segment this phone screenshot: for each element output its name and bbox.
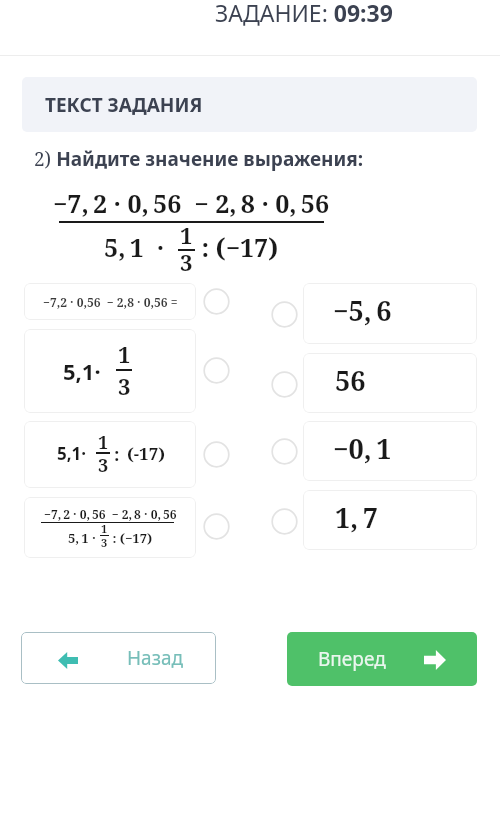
staticText: 1 [118, 339, 131, 369]
button[interactable]: Выбрать вариант ответа [271, 371, 298, 398]
staticText: 3 [118, 371, 131, 401]
button[interactable]: Выбрать вариант ответа [203, 441, 230, 468]
button[interactable]: 5,1· [24, 421, 196, 488]
button[interactable]: Выбрать вариант ответа [203, 288, 230, 315]
button[interactable]: Вперед [287, 632, 477, 686]
staticText: 1, 7 [335, 499, 378, 536]
staticText: Назад [127, 645, 184, 671]
staticText: −7, 2 · 0, 56 − 2, 8 · 0, 56 [44, 506, 177, 522]
staticText: −0, 1 [333, 430, 392, 467]
button[interactable]: −0, 1 [303, 421, 477, 481]
button[interactable]: 56 [303, 353, 477, 413]
staticText: −5, 6 [333, 292, 392, 329]
button[interactable]: Выбрать вариант ответа [203, 513, 230, 540]
staticText: : (−17) [109, 529, 153, 547]
button[interactable]: 1, 7 [303, 490, 477, 550]
button[interactable]: ТЕКСТ ЗАДАНИЯ [22, 77, 477, 132]
staticText: : [114, 442, 120, 467]
staticText: 1 [101, 521, 108, 536]
button[interactable]: −7, 2 · 0, 56 − 2, 8 · 0, 56 [24, 497, 196, 558]
staticText: 2) Найдите значение выражения: [34, 146, 364, 172]
staticText: −7,2 · 0,56 − 2,8 · 0,56 = [43, 294, 178, 310]
staticText: : (−17) [195, 230, 279, 264]
button[interactable]: Выбрать вариант ответа [271, 438, 298, 465]
staticText: 5, 1 · [68, 529, 100, 547]
staticText: ЗАДАНИЕ: 09:39 [215, 0, 393, 28]
staticText: 5, 1 · [104, 230, 178, 264]
staticText: 5,1· [63, 356, 101, 386]
staticText: 3 [101, 535, 108, 550]
staticText: −7, 2 · 0, 56 − 2, 8 · 0, 56 [53, 186, 330, 220]
staticText: Вперед [318, 646, 386, 672]
staticText: 56 [335, 362, 366, 399]
button[interactable]: Выбрать вариант ответа [271, 301, 298, 328]
staticText: 3 [98, 453, 109, 478]
staticText: 3 [180, 247, 193, 277]
staticText: 5,1· [57, 442, 87, 465]
staticText: ТЕКСТ ЗАДАНИЯ [45, 92, 203, 118]
button[interactable]: Выбрать вариант ответа [271, 508, 298, 535]
button[interactable]: −5, 6 [303, 283, 477, 344]
button[interactable]: Выбрать вариант ответа [203, 357, 230, 384]
staticText: 1 [98, 430, 109, 455]
button[interactable]: Назад [21, 632, 216, 684]
staticText: 1 [180, 220, 193, 250]
button[interactable]: −7,2 · 0,56 − 2,8 · 0,56 = [24, 283, 196, 320]
button[interactable]: 5,1· [24, 329, 196, 413]
staticText: (-17) [127, 442, 166, 465]
